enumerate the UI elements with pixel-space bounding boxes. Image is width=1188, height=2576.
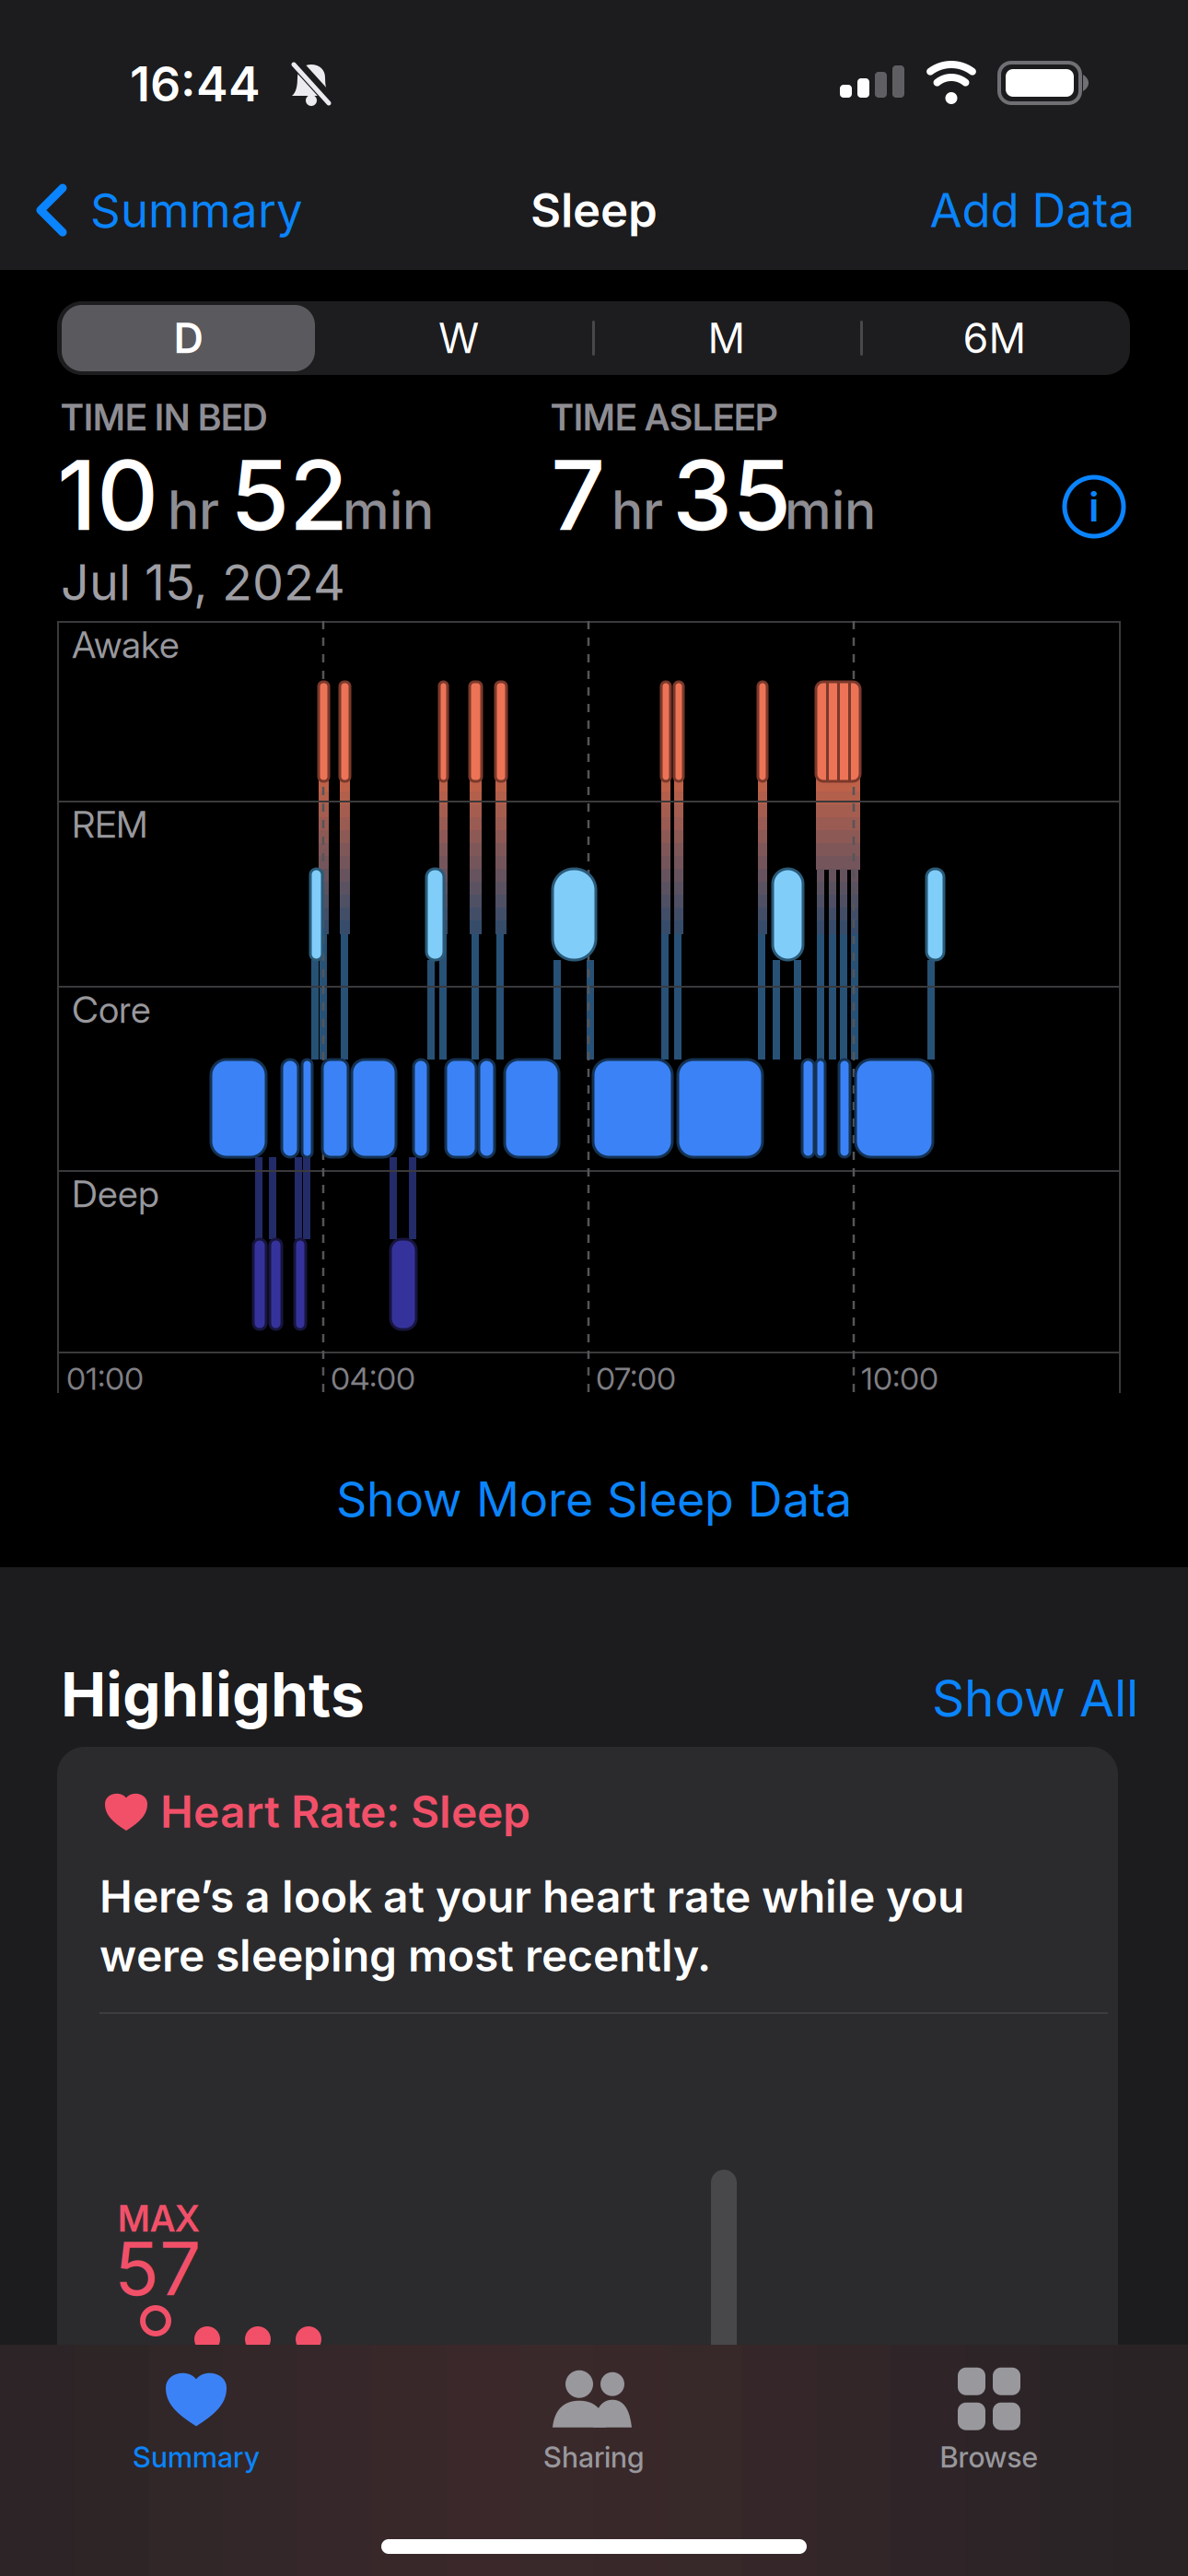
staticText: i (1089, 483, 1100, 531)
button[interactable]: D (62, 305, 315, 371)
staticText: 10 (57, 439, 158, 552)
staticText: D (174, 314, 203, 363)
staticText: Browse (940, 2440, 1038, 2474)
button[interactable]: Add Data (930, 182, 1135, 238)
button[interactable]: W (348, 303, 569, 373)
staticText: hr (611, 479, 663, 541)
staticText: REM (72, 802, 147, 846)
staticText: W (438, 314, 479, 363)
button[interactable]: Heart Rate: Sleep (57, 1747, 1118, 2576)
staticText: 10:00 (861, 1360, 938, 1397)
staticText: min (343, 479, 434, 541)
staticText: Awake (72, 623, 180, 666)
staticText: min (785, 479, 876, 541)
staticText: TIME ASLEEP (551, 396, 777, 439)
staticText: Show All (932, 1668, 1138, 1728)
staticText: MAX (118, 2197, 200, 2240)
button[interactable]: More information (1065, 477, 1124, 536)
button[interactable]: Show More Sleep Data (336, 1471, 852, 1527)
staticText: 01:00 (66, 1360, 144, 1397)
staticText: 6M (963, 314, 1026, 363)
staticText: M (708, 314, 745, 363)
staticText: 7 (551, 439, 605, 552)
staticText: 35 (672, 439, 791, 552)
button[interactable]: Show All (932, 1668, 1138, 1728)
staticText: 07:00 (596, 1360, 676, 1397)
button[interactable]: 6M (884, 303, 1105, 373)
staticText: hr (168, 479, 219, 541)
staticText: Add Data (930, 182, 1135, 238)
staticText: TIME IN BED (61, 396, 267, 439)
button[interactable]: M (616, 303, 837, 373)
button[interactable]: Browse (869, 2362, 1109, 2482)
staticText: 52 (230, 439, 348, 552)
staticText: Sleep (530, 182, 658, 238)
button[interactable]: Sharing (474, 2362, 714, 2482)
staticText: Heart Rate: Sleep (160, 1786, 530, 1838)
staticText: Jul 15, 2024 (61, 553, 345, 611)
staticText: Sharing (543, 2440, 645, 2474)
staticText: Core (72, 988, 151, 1031)
staticText: Summary (90, 182, 303, 238)
staticText: Highlights (61, 1658, 365, 1730)
staticText: 04:00 (331, 1360, 415, 1397)
staticText: 16:44 (130, 56, 261, 112)
staticText: Show More Sleep Data (336, 1471, 852, 1527)
button[interactable]: Summary (76, 2362, 316, 2482)
staticText: Deep (72, 1172, 159, 1215)
staticText: Here’s a look at your heart rate while y… (99, 1870, 964, 1922)
staticText: 57 (114, 2225, 201, 2312)
staticText: were sleeping most recently. (99, 1929, 711, 1981)
button[interactable]: Summary (37, 182, 303, 238)
staticText: Summary (133, 2440, 260, 2474)
